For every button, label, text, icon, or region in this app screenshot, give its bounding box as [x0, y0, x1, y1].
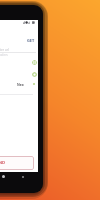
staticText: Headers — [0, 53, 8, 57]
button[interactable]: GET — [26, 37, 35, 43]
staticText: SEND — [0, 160, 6, 166]
button[interactable]: SEND — [0, 156, 34, 170]
button[interactable]: Add parameter — [32, 72, 37, 77]
staticText: Enter url — [0, 48, 9, 52]
staticText: Next — [17, 82, 25, 87]
staticText: GET — [27, 38, 35, 43]
button[interactable]: Add header — [32, 60, 37, 65]
button[interactable]: Next — [17, 82, 25, 87]
